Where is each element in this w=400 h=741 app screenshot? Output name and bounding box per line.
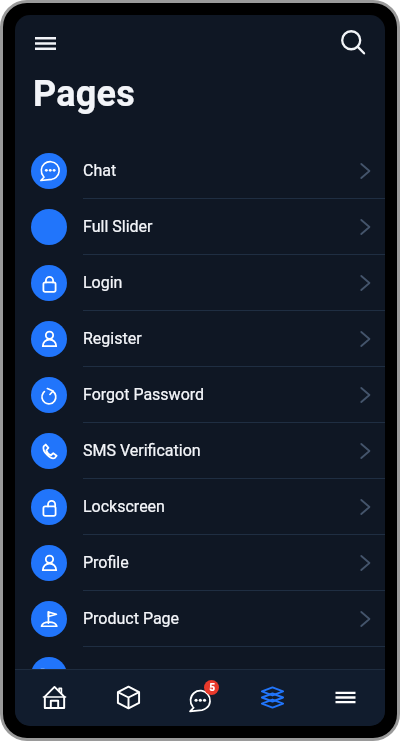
button[interactable]: Full Slider (15, 199, 385, 255)
button[interactable]: Register (15, 311, 385, 367)
button[interactable]: Product Page (15, 591, 385, 647)
staticText: Chat (83, 161, 117, 180)
staticText: Login (83, 273, 123, 292)
staticText: Register (83, 329, 142, 348)
button[interactable]: Menu (26, 24, 64, 62)
staticText: Full Slider (83, 217, 153, 236)
button[interactable]: Lockscreen (15, 479, 385, 535)
button[interactable]: Forgot Password (15, 367, 385, 423)
button[interactable]: More (309, 669, 382, 726)
button[interactable]: Layers (236, 669, 309, 726)
button[interactable]: Login (15, 255, 385, 311)
button[interactable]: Messages (163, 669, 236, 726)
staticText: Product Page (83, 609, 180, 628)
button[interactable]: Products (90, 669, 163, 726)
staticText: SMS Verification (83, 441, 201, 460)
button[interactable]: Chat (15, 143, 385, 199)
staticText: Profile (83, 553, 129, 572)
staticText: Forgot Password (83, 385, 205, 404)
staticText: Pages (33, 73, 135, 115)
button[interactable]: Search (336, 26, 370, 60)
staticText: 5 (209, 682, 215, 694)
button[interactable] (15, 647, 385, 703)
button[interactable]: Home (18, 669, 90, 726)
staticText: Lockscreen (83, 497, 165, 516)
button[interactable]: SMS Verification (15, 423, 385, 479)
button[interactable]: Profile (15, 535, 385, 591)
